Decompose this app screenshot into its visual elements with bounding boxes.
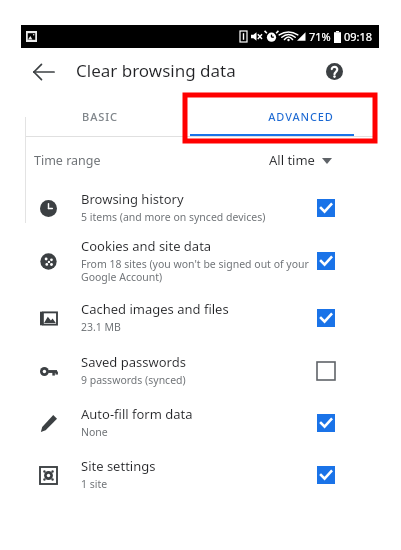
staticText: Cached images and files <box>81 300 229 318</box>
staticText: All time <box>269 151 315 169</box>
button[interactable]: Site settings <box>0 452 401 498</box>
button[interactable]: Help <box>322 59 346 83</box>
button[interactable]: Unchecked Saved passwords <box>317 362 335 380</box>
button[interactable]: ADVANCED <box>200 95 401 137</box>
button[interactable]: Browsing history <box>0 185 401 231</box>
button[interactable]: Saved passwords <box>0 348 401 394</box>
button[interactable]: Back <box>30 58 58 86</box>
staticText: 23.1 MB <box>81 320 121 334</box>
staticText: 09:18 <box>344 29 373 44</box>
staticText: ADVANCED <box>268 109 334 124</box>
staticText: Clear browsing data <box>76 59 236 82</box>
staticText: Site settings <box>81 457 156 475</box>
staticText: 71% <box>309 29 331 44</box>
staticText: None <box>81 425 108 439</box>
staticText: Auto-fill form data <box>81 405 193 423</box>
staticText: From 18 sites (you won't be signed out o… <box>81 257 309 284</box>
staticText: Browsing history <box>81 190 184 208</box>
button[interactable]: BASIC <box>0 95 200 137</box>
button[interactable]: Cached images and files <box>0 295 401 341</box>
button[interactable]: Checked Browsing history <box>317 199 335 217</box>
staticText: Time range <box>34 152 101 169</box>
staticText: Saved passwords <box>81 353 186 371</box>
staticText: BASIC <box>82 109 118 124</box>
button[interactable]: Checked Site settings <box>317 466 335 484</box>
button[interactable]: Time range <box>0 141 401 180</box>
staticText: Cookies and site data <box>81 237 212 255</box>
button[interactable]: Checked Cached images and files <box>317 309 335 327</box>
staticText: 9 passwords (synced) <box>81 373 186 387</box>
button[interactable]: Checked Cookies and site data <box>317 252 335 270</box>
button[interactable]: Auto-fill form data <box>0 400 401 446</box>
button[interactable]: Checked Auto-fill form data <box>317 414 335 432</box>
button[interactable]: Cookies and site data <box>0 232 401 290</box>
staticText: 1 site <box>81 477 108 491</box>
staticText: 5 items (and more on synced devices) <box>81 210 266 224</box>
